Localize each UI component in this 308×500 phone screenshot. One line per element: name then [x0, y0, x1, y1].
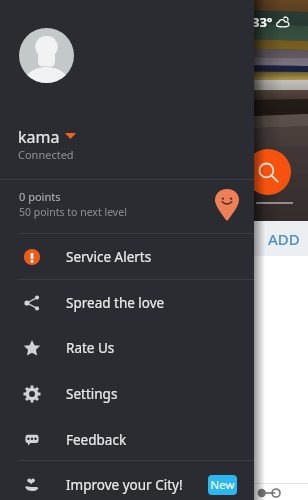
button[interactable]: Spread the love — [0, 280, 254, 326]
staticText: Rate Us — [66, 339, 115, 357]
staticText: 50 points to next level — [19, 205, 127, 219]
staticText: ADD — [268, 229, 300, 249]
staticText: Spread the love — [66, 294, 165, 312]
staticText: 0 points — [19, 189, 61, 204]
staticText: Connected — [18, 147, 74, 162]
staticText: 33° — [252, 13, 273, 31]
button[interactable]: Rate Us — [0, 325, 254, 371]
button[interactable]: Feedback — [0, 417, 254, 463]
staticText: Service Alerts — [66, 248, 152, 266]
button[interactable]: Profile picture — [19, 28, 74, 83]
button[interactable]: Service Alerts — [0, 234, 254, 280]
button[interactable]: Improve your City! — [0, 462, 254, 500]
button[interactable]: Search — [245, 149, 291, 195]
staticText: New — [210, 477, 235, 493]
staticText: Feedback — [66, 431, 127, 449]
button[interactable]: Settings — [0, 371, 254, 417]
staticText: Settings — [66, 385, 118, 403]
staticText: kama — [18, 126, 60, 148]
staticText: Improve your City! — [66, 476, 183, 494]
